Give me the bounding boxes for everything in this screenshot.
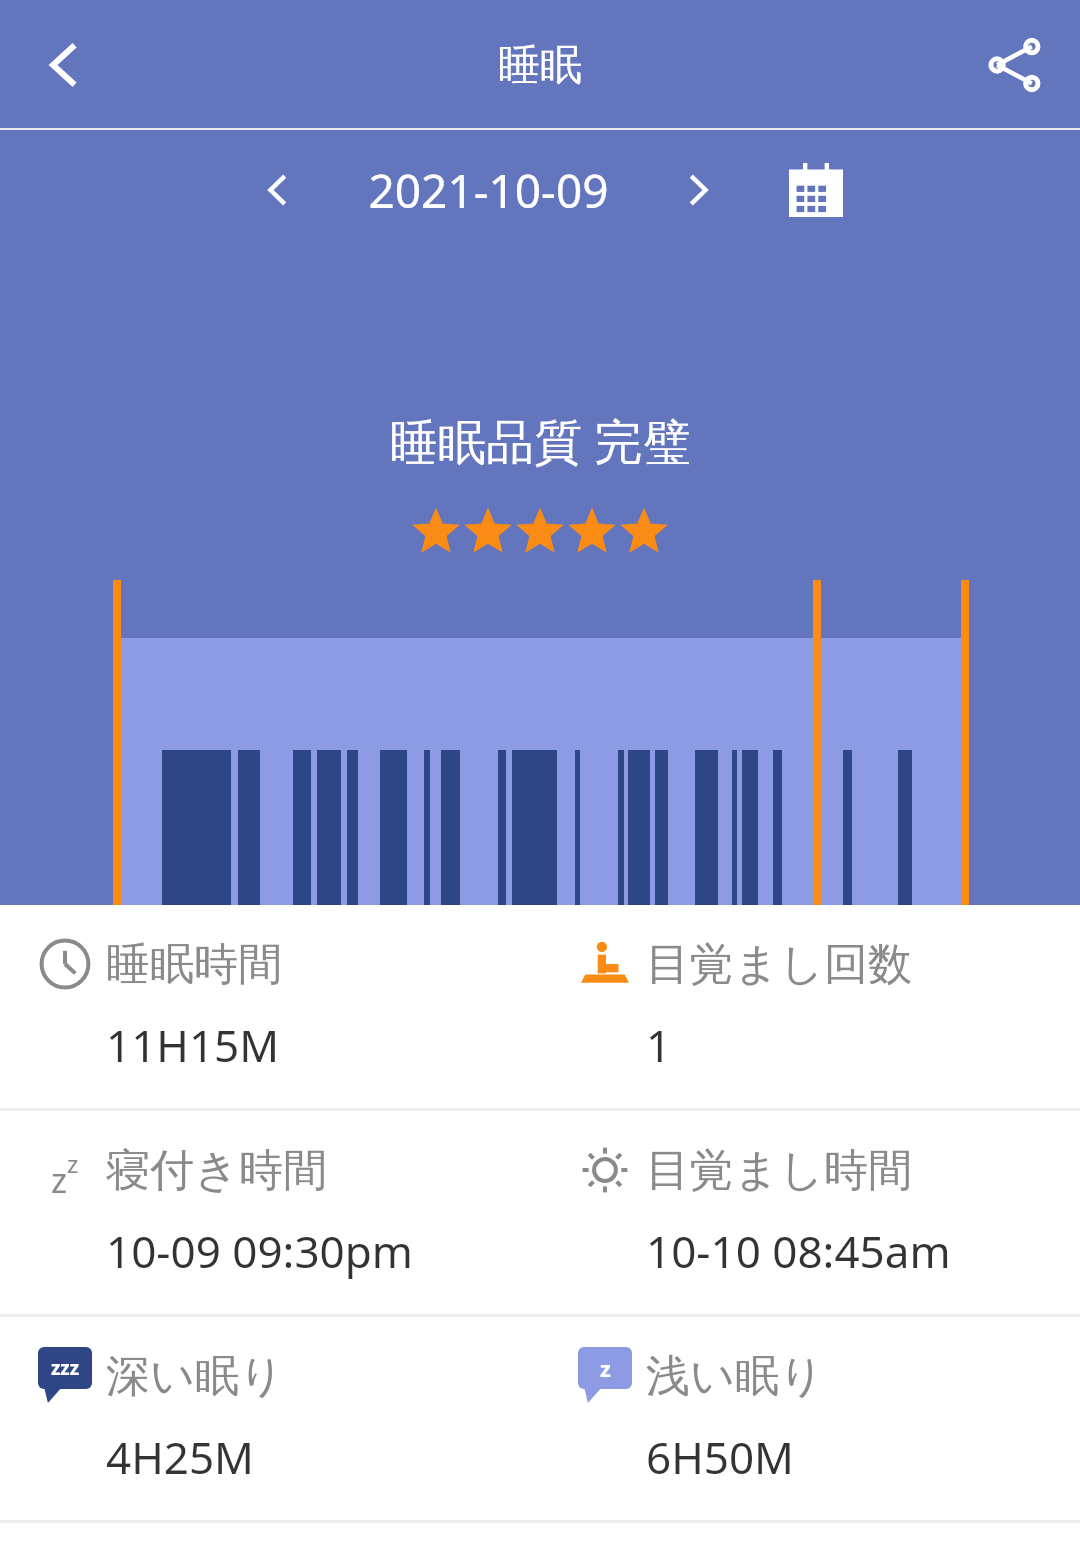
button[interactable]: 目覚まし時間	[540, 1111, 1080, 1314]
button[interactable]: Previous day	[238, 150, 318, 230]
button[interactable]: Back	[22, 22, 108, 108]
button[interactable]: Share	[972, 22, 1058, 108]
staticText: 11H15M	[106, 1015, 280, 1075]
button[interactable]: Pick date	[776, 150, 856, 230]
staticText: 睡眠時間	[106, 937, 282, 992]
staticText: 6H50M	[646, 1427, 795, 1487]
button[interactable]: 前の段落	[0, 917, 300, 997]
staticText: 浅い眠り	[646, 1349, 825, 1404]
staticText: 2021-10-09	[368, 159, 609, 222]
button[interactable]: z	[540, 1317, 1080, 1520]
staticText: 睡眠品質 完璧	[390, 408, 691, 474]
staticText: 目覚まし時間	[646, 1143, 913, 1198]
staticText: z	[51, 1157, 67, 1203]
staticText: 目覚まし回数	[646, 937, 913, 992]
staticText: zzz	[51, 1355, 80, 1381]
staticText: z	[67, 1147, 79, 1180]
staticText: 睡眠	[498, 39, 582, 92]
staticText: 10-10 08:45am	[646, 1221, 951, 1281]
button[interactable]: 目覚まし回数	[540, 905, 1080, 1108]
staticText: 10-09 09:30pm	[106, 1221, 413, 1281]
staticText: 寝付き時間	[106, 1143, 328, 1198]
button[interactable]: z	[0, 1111, 540, 1314]
button[interactable]: 次の段落	[780, 917, 1080, 997]
staticText: 1	[646, 1015, 672, 1075]
staticText: 4H25M	[106, 1427, 255, 1487]
button[interactable]: 2021-10-09	[318, 159, 658, 222]
staticText: 次の段落	[854, 933, 1007, 981]
staticText: 09:30pm-08:45am	[362, 929, 719, 986]
button[interactable]: zzz	[0, 1317, 540, 1520]
staticText: 前の段落	[74, 933, 227, 981]
staticText: 深い眠り	[106, 1349, 285, 1404]
button[interactable]: 睡眠時間	[0, 905, 540, 1108]
staticText: z	[600, 1353, 611, 1383]
button[interactable]: Next day	[658, 150, 738, 230]
